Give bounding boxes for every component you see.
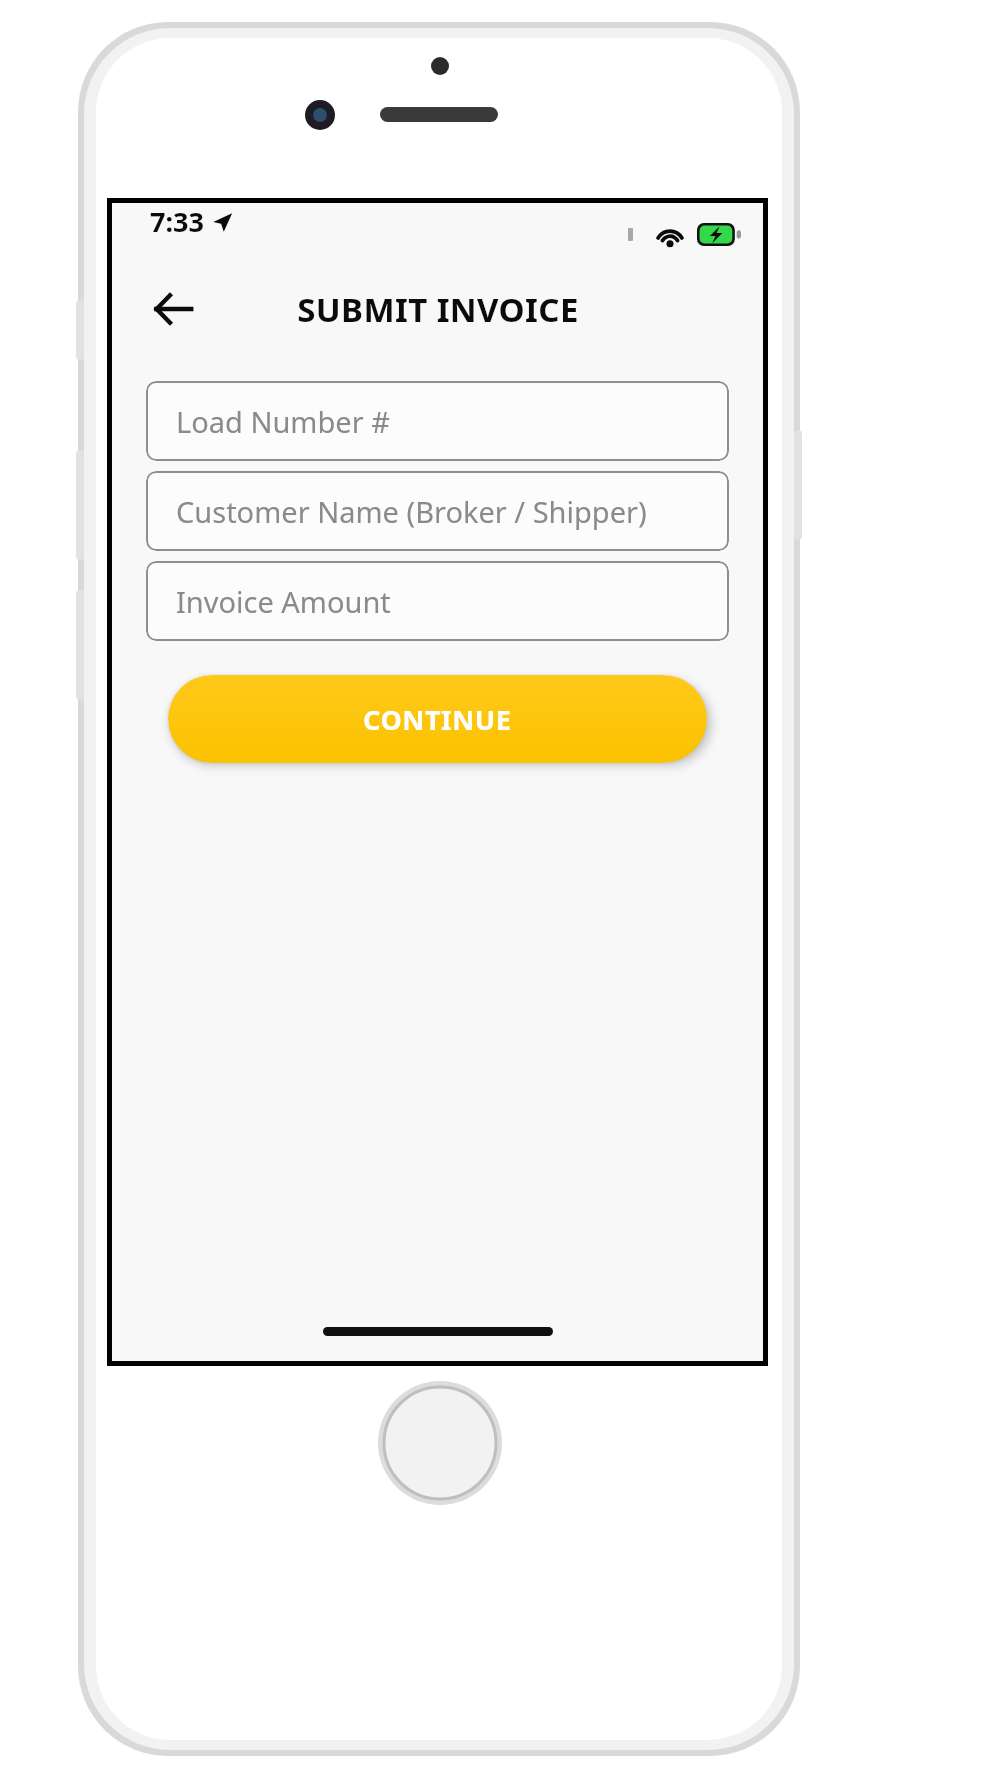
staticText: 7:33: [150, 203, 204, 240]
button[interactable]: Back: [144, 280, 202, 338]
staticText: CONTINUE: [363, 701, 512, 738]
button[interactable]: Customer Name (Broker / Shipper): [146, 471, 729, 551]
staticText: Customer Name (Broker / Shipper): [176, 492, 647, 531]
button[interactable]: Invoice Amount: [146, 561, 729, 641]
button[interactable]: Load Number #: [146, 381, 729, 461]
staticText: Invoice Amount: [176, 582, 391, 621]
staticText: SUBMIT INVOICE: [297, 287, 579, 332]
staticText: Load Number #: [176, 402, 390, 441]
button[interactable]: CONTINUE: [168, 675, 707, 763]
